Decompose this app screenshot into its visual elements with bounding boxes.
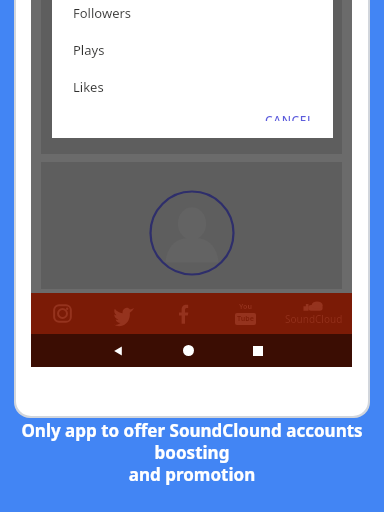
button[interactable]: Instagram [31, 293, 93, 334]
button[interactable]: Facebook [154, 293, 215, 334]
button[interactable]: Home [153, 334, 223, 367]
staticText: Followers [73, 4, 132, 22]
button[interactable]: Plays [52, 31, 333, 68]
staticText: Plays [73, 41, 105, 59]
button[interactable]: Likes [52, 68, 333, 105]
staticText: CANCEL [265, 112, 315, 121]
button[interactable]: Followers [52, 0, 333, 31]
staticText: Likes [73, 78, 104, 96]
button[interactable]: CANCEL [255, 105, 325, 128]
staticText: You [239, 302, 252, 312]
button[interactable]: YouTube [215, 293, 276, 334]
button[interactable]: Back [83, 334, 153, 367]
staticText: Only app to offer SoundClound accounts b… [0, 419, 384, 486]
button[interactable]: Twitter [93, 293, 154, 334]
staticText: Tube [237, 314, 254, 324]
staticText: SoundCloud [285, 312, 343, 326]
button[interactable]: Recents [223, 334, 293, 367]
button[interactable]: SoundCloud [276, 293, 352, 334]
